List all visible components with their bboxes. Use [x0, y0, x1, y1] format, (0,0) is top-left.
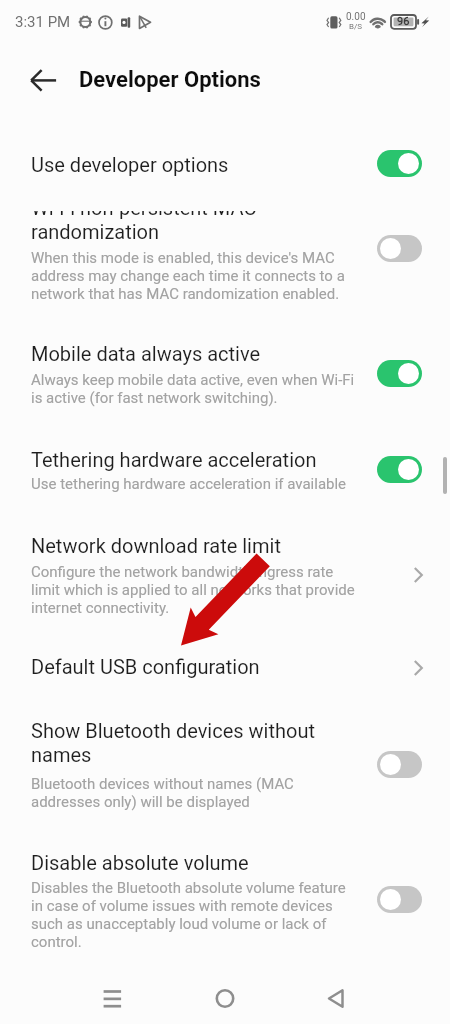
staticText: 96: [397, 15, 410, 28]
staticText: Network download rate limit: [31, 534, 351, 557]
staticText: 3:31 PM: [15, 13, 71, 31]
button[interactable]: [0, 436, 450, 504]
button[interactable]: [0, 133, 450, 193]
staticText: Mobile data always active: [31, 342, 351, 365]
button[interactable]: Recent apps: [86, 972, 139, 1024]
staticText: Configure the network bandwidth ingress …: [31, 563, 358, 617]
button[interactable]: [0, 835, 450, 950]
button[interactable]: [0, 710, 450, 815]
button[interactable]: Open settings: [403, 560, 433, 590]
button[interactable]: Switch off: [377, 886, 422, 913]
staticText: Use developer options: [31, 153, 351, 176]
staticText: When this mode is enabled, this device's…: [31, 249, 358, 303]
staticText: Disable absolute volume: [31, 851, 351, 874]
button[interactable]: [0, 522, 450, 622]
button[interactable]: Back: [310, 972, 363, 1024]
button[interactable]: Switch off: [377, 751, 422, 778]
button[interactable]: Switch on: [377, 150, 422, 177]
staticText: Wi-Fi non-persistent MAC randomization: [31, 211, 257, 240]
staticText: B/S: [349, 22, 363, 31]
button[interactable]: [0, 645, 450, 700]
button[interactable]: Switch off: [377, 235, 422, 262]
button[interactable]: Open settings: [403, 653, 433, 683]
staticText: Use tethering hardware acceleration if a…: [31, 475, 358, 493]
staticText: Developer Options: [79, 67, 261, 93]
staticText: Tethering hardware acceleration: [31, 448, 351, 471]
button[interactable]: Switch on: [377, 456, 422, 483]
button[interactable]: Back: [21, 61, 61, 101]
staticText: Default USB configuration: [31, 655, 351, 678]
staticText: Bluetooth devices without names (MAC add…: [31, 775, 358, 811]
button[interactable]: [0, 330, 450, 415]
staticText: 0.00: [346, 11, 366, 23]
button[interactable]: Switch on: [377, 360, 422, 387]
staticText: Show Bluetooth devices without names: [31, 719, 351, 767]
staticText: Always keep mobile data active, even whe…: [31, 371, 358, 407]
staticText: Disables the Bluetooth absolute volume f…: [31, 879, 358, 951]
button[interactable]: Home: [198, 972, 251, 1024]
button[interactable]: [0, 196, 450, 311]
